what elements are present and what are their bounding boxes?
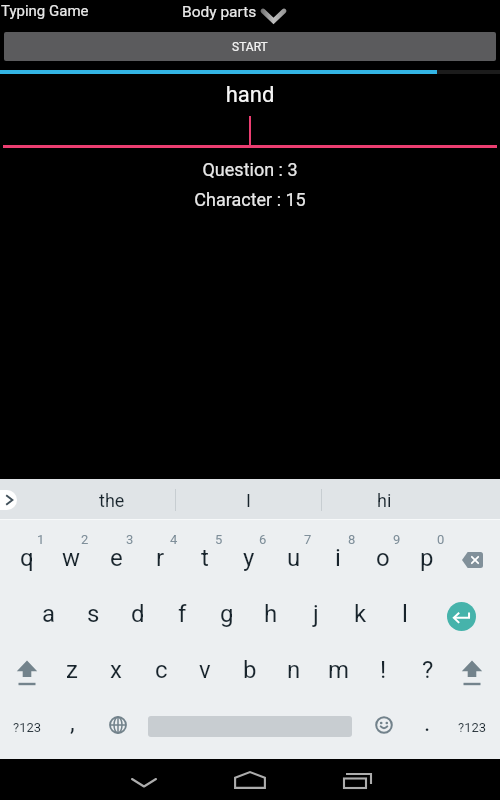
button[interactable]: a [27, 586, 71, 636]
staticText: ?123 [13, 720, 42, 735]
button[interactable]: ?123 [450, 695, 494, 745]
button[interactable]: j [294, 586, 338, 636]
button[interactable]: , [50, 695, 94, 745]
button[interactable]: ? [406, 642, 450, 692]
staticText: hand [0, 82, 500, 108]
staticText: c [155, 656, 168, 684]
staticText: d [131, 600, 145, 628]
staticText: 0 [437, 532, 445, 547]
staticText: w [62, 544, 81, 572]
button[interactable]: Shift [5, 650, 49, 696]
button[interactable]: g [205, 586, 249, 636]
button[interactable]: Emoji [362, 700, 406, 750]
staticText: Question : 3 [0, 159, 500, 180]
button[interactable]: START [4, 32, 496, 61]
staticText: . [424, 709, 431, 737]
button[interactable]: Enter [447, 602, 476, 631]
staticText: the [99, 490, 125, 511]
staticText: p [420, 544, 434, 572]
staticText: hi [377, 490, 392, 511]
button[interactable]: More suggestions [0, 490, 17, 510]
staticText: f [178, 600, 187, 628]
button[interactable]: l [383, 586, 427, 636]
button[interactable]: ?123 [5, 695, 49, 745]
staticText: q [20, 544, 34, 572]
staticText: m [328, 656, 350, 684]
button[interactable]: o [361, 530, 405, 580]
staticText: 7 [304, 532, 312, 547]
staticText: s [87, 600, 100, 628]
button[interactable]: t [183, 530, 227, 580]
button[interactable]: Back [114, 764, 174, 795]
staticText: v [199, 656, 211, 684]
staticText: y [243, 544, 255, 572]
staticText: Typing Game [1, 2, 89, 20]
button[interactable]: ! [361, 642, 405, 692]
button[interactable]: u [272, 530, 316, 580]
button[interactable]: d [116, 586, 160, 636]
staticText: n [287, 656, 301, 684]
staticText: t [201, 544, 209, 572]
staticText: , [70, 709, 75, 737]
staticText: e [110, 544, 123, 572]
staticText: l [402, 600, 408, 628]
staticText: 5 [215, 532, 223, 547]
staticText: o [376, 544, 390, 572]
button[interactable]: Body parts [180, 0, 290, 26]
button[interactable]: Typing Game [1, 0, 89, 24]
staticText: 1 [37, 532, 45, 547]
button[interactable]: e [94, 530, 138, 580]
button[interactable]: m [317, 642, 361, 692]
button[interactable]: Home [220, 764, 280, 795]
staticText: ? [422, 656, 434, 684]
staticText: g [220, 600, 234, 628]
staticText: 4 [170, 532, 178, 547]
staticText: r [156, 544, 165, 572]
staticText: 3 [126, 532, 134, 547]
button[interactable]: h [249, 586, 293, 636]
button[interactable]: . [405, 695, 449, 745]
staticText: 2 [81, 532, 89, 547]
button[interactable]: w [49, 530, 93, 580]
button[interactable]: r [138, 530, 182, 580]
button[interactable]: f [160, 586, 204, 636]
button[interactable]: p [405, 530, 449, 580]
button[interactable]: s [71, 586, 115, 636]
button[interactable]: Recents [330, 764, 390, 795]
staticText: ! [380, 656, 387, 684]
staticText: 8 [348, 532, 356, 547]
staticText: j [313, 600, 319, 628]
staticText: Body parts [182, 3, 257, 21]
staticText: START [232, 40, 268, 54]
button[interactable]: Backspace [450, 530, 494, 580]
button[interactable]: Change language [96, 700, 140, 750]
button[interactable]: v [183, 642, 227, 692]
staticText: z [66, 656, 78, 684]
button[interactable]: y [227, 530, 271, 580]
staticText: k [354, 600, 367, 628]
staticText: h [264, 600, 278, 628]
staticText: i [335, 544, 341, 572]
staticText: a [42, 600, 56, 628]
staticText: Character : 15 [0, 189, 500, 210]
button[interactable]: b [228, 642, 272, 692]
button[interactable]: z [50, 642, 94, 692]
button[interactable]: I [188, 479, 308, 519]
button[interactable]: the [52, 479, 172, 519]
button[interactable]: q [5, 530, 49, 580]
staticText: I [246, 490, 251, 511]
button[interactable]: Shift [450, 650, 494, 696]
staticText: ?123 [458, 720, 487, 735]
staticText: x [110, 656, 122, 684]
staticText: u [287, 544, 301, 572]
staticText: b [243, 656, 257, 684]
button[interactable]: x [94, 642, 138, 692]
button[interactable]: n [272, 642, 316, 692]
button[interactable]: c [139, 642, 183, 692]
button[interactable]: i [316, 530, 360, 580]
staticText: 6 [259, 532, 267, 547]
button[interactable]: k [338, 586, 382, 636]
staticText: 9 [393, 532, 401, 547]
button[interactable]: hi [324, 479, 444, 519]
